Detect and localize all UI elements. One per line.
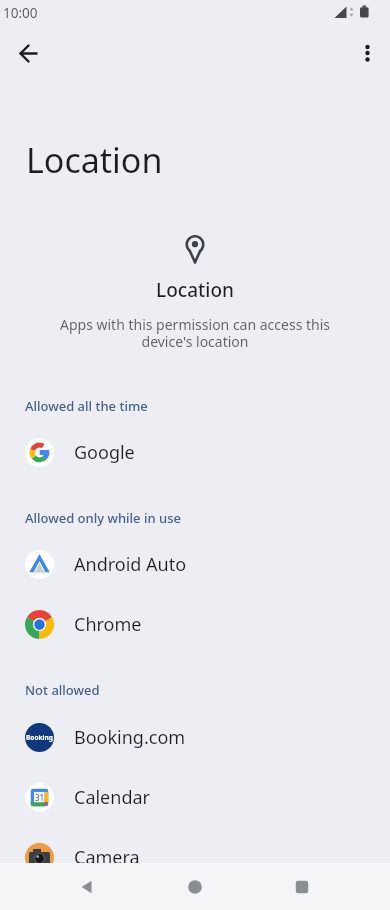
- button[interactable]: 31: [0, 767, 390, 827]
- staticText: Chrome: [74, 612, 142, 637]
- staticText: Camera: [74, 845, 140, 870]
- staticText: Location: [26, 137, 163, 183]
- button[interactable]: Google: [0, 422, 390, 482]
- staticText: Not allowed: [25, 681, 100, 699]
- staticText: Allowed all the time: [25, 397, 148, 415]
- staticText: Location: [0, 277, 390, 303]
- button[interactable]: [63, 863, 111, 910]
- button[interactable]: [171, 863, 219, 910]
- button[interactable]: [5, 29, 53, 77]
- button[interactable]: Camera: [0, 827, 390, 887]
- staticText: Apps with this permission can access thi…: [0, 315, 390, 351]
- staticText: Calendar: [74, 785, 150, 810]
- button[interactable]: [278, 863, 326, 910]
- button[interactable]: Booking: [0, 707, 390, 767]
- staticText: Google: [74, 440, 135, 465]
- staticText: Booking: [26, 733, 53, 742]
- staticText: Android Auto: [74, 552, 187, 577]
- staticText: 10:00: [3, 4, 38, 22]
- button[interactable]: [343, 29, 390, 77]
- staticText: Booking.com: [74, 725, 186, 750]
- staticText: Allowed only while in use: [25, 509, 181, 527]
- staticText: 31: [35, 792, 45, 803]
- button[interactable]: Chrome: [0, 594, 390, 654]
- button[interactable]: Android Auto: [0, 534, 390, 594]
